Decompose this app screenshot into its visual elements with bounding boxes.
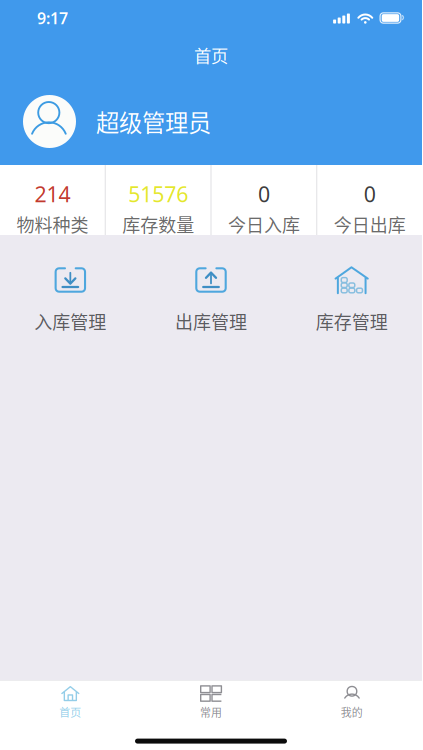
staticText: 我的 (341, 704, 363, 720)
button[interactable]: 51576 (106, 165, 211, 235)
button[interactable]: 库存管理 (281, 267, 422, 334)
staticText: 今日入库 (228, 211, 300, 237)
staticText: 超级管理员 (96, 105, 211, 138)
staticText: 库存数量 (122, 211, 194, 237)
staticText: 0 (364, 180, 376, 208)
button[interactable]: 我的 (281, 681, 422, 727)
button[interactable]: 常用 (141, 681, 281, 727)
staticText: 9:17 (37, 7, 68, 29)
button[interactable]: 出库管理 (141, 267, 281, 334)
button[interactable]: 0 (211, 165, 316, 235)
staticText: 首页 (59, 704, 81, 720)
staticText: 214 (34, 180, 70, 208)
staticText: 首页 (194, 42, 228, 68)
button[interactable]: 0 (317, 165, 422, 235)
staticText: 今日出库 (334, 211, 406, 237)
staticText: 出库管理 (175, 308, 247, 334)
button[interactable]: 首页 (0, 36, 422, 74)
staticText: 常用 (200, 704, 222, 720)
staticText: 物料种类 (16, 211, 88, 237)
button[interactable]: 入库管理 (0, 267, 141, 334)
staticText: 51576 (128, 180, 188, 208)
button[interactable]: 214 (0, 165, 105, 235)
staticText: 入库管理 (34, 308, 106, 334)
staticText: 库存管理 (316, 308, 388, 334)
button[interactable]: 首页 (0, 681, 141, 727)
staticText: 0 (258, 180, 270, 208)
